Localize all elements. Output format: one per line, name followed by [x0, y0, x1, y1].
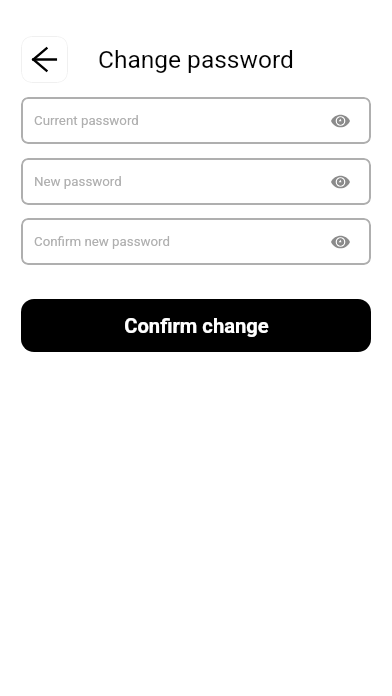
staticText: Current password: [34, 113, 139, 129]
button[interactable]: Show password: [327, 169, 353, 195]
button[interactable]: Show password: [327, 229, 353, 255]
staticText: Confirm new password: [34, 234, 170, 250]
button[interactable]: Current password: [21, 97, 371, 144]
button[interactable]: Show password: [327, 108, 353, 134]
staticText: New password: [34, 174, 122, 190]
button[interactable]: Back: [21, 36, 68, 83]
button[interactable]: Confirm new password: [21, 218, 371, 265]
staticText: Confirm change: [124, 314, 269, 338]
staticText: Change password: [98, 45, 294, 74]
button[interactable]: New password: [21, 158, 371, 205]
button[interactable]: Confirm change: [21, 299, 371, 352]
